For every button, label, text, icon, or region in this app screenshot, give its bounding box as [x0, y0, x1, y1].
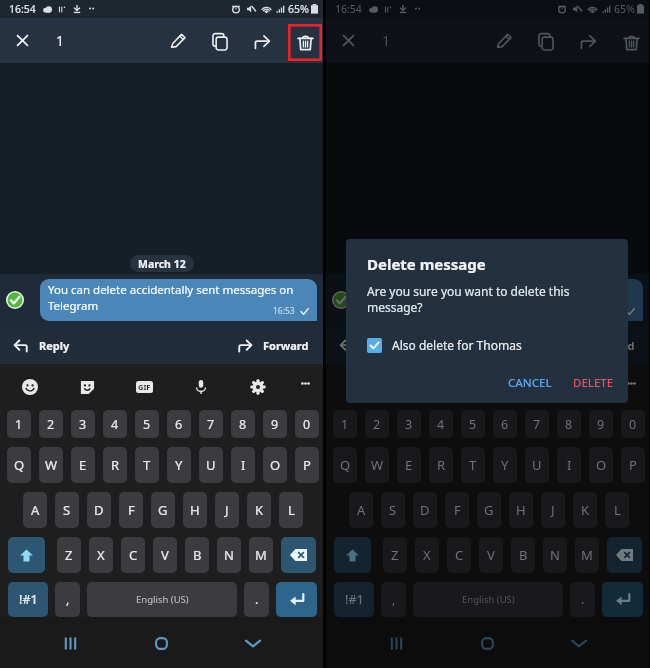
button[interactable]: D — [87, 492, 111, 528]
button[interactable]: Recents — [374, 621, 418, 665]
button[interactable]: Home — [139, 621, 183, 665]
button[interactable]: You can delete accidentally sent message… — [40, 279, 317, 321]
button[interactable]: P — [621, 447, 645, 483]
button[interactable]: H — [183, 492, 207, 528]
button[interactable]: Y — [493, 447, 517, 483]
button[interactable]: 4 — [103, 410, 127, 438]
button[interactable]: 5 — [461, 410, 485, 438]
button[interactable]: Also delete for Thomas — [367, 335, 522, 355]
button[interactable]: D — [413, 492, 437, 528]
button[interactable]: I — [231, 447, 255, 483]
button[interactable]: Q — [333, 447, 357, 483]
button[interactable]: M — [575, 537, 599, 573]
button[interactable]: !#1 — [8, 582, 48, 617]
button[interactable]: Hide keyboard — [231, 621, 275, 665]
button[interactable]: Home — [465, 621, 509, 665]
button[interactable]: Q — [7, 447, 31, 483]
button[interactable]: 3 — [71, 410, 95, 438]
button[interactable]: English (US) — [87, 582, 237, 617]
button[interactable]: 7 — [199, 410, 223, 438]
button[interactable]: Enter — [276, 582, 317, 617]
button[interactable]: !#1 — [334, 582, 374, 617]
button[interactable]: G — [151, 492, 175, 528]
button[interactable]: K — [247, 492, 271, 528]
button[interactable]: E — [71, 447, 95, 483]
button[interactable]: X — [415, 537, 439, 573]
button[interactable]: Recents — [48, 621, 92, 665]
button[interactable]: Stickers — [73, 373, 101, 401]
button[interactable]: DELETE — [565, 371, 622, 395]
button[interactable]: T — [461, 447, 485, 483]
button[interactable]: E — [397, 447, 421, 483]
button[interactable]: Settings — [570, 373, 598, 401]
button[interactable]: X — [89, 537, 113, 573]
button[interactable]: Shift — [334, 537, 371, 573]
button[interactable]: Close — [0, 18, 44, 63]
button[interactable]: O — [263, 447, 287, 483]
button[interactable]: Forward — [161, 326, 323, 364]
button[interactable]: R — [103, 447, 127, 483]
button[interactable]: More — [627, 373, 636, 401]
button[interactable]: 2 — [39, 410, 63, 438]
button[interactable]: More — [301, 373, 310, 401]
button[interactable]: Z — [57, 537, 81, 573]
button[interactable]: Forward — [487, 326, 649, 364]
button[interactable]: 9 — [263, 410, 287, 438]
button[interactable]: H — [509, 492, 533, 528]
button[interactable]: S — [55, 492, 79, 528]
button[interactable]: Reply — [0, 326, 161, 364]
button[interactable]: Reply — [326, 326, 487, 364]
button[interactable]: Voice input — [513, 373, 541, 401]
button[interactable]: Shift — [8, 537, 45, 573]
button[interactable]: , — [381, 582, 406, 617]
button[interactable]: 9 — [589, 410, 613, 438]
button[interactable]: I — [557, 447, 581, 483]
button[interactable]: 0 — [621, 410, 645, 438]
button[interactable]: T — [135, 447, 159, 483]
button[interactable]: Y — [167, 447, 191, 483]
button[interactable]: A — [23, 492, 47, 528]
button[interactable]: Delete — [609, 18, 647, 63]
button[interactable]: Edit — [484, 18, 525, 63]
button[interactable]: U — [525, 447, 549, 483]
button[interactable]: Edit — [158, 18, 199, 63]
button[interactable]: J — [215, 492, 239, 528]
button[interactable]: English (US) — [413, 582, 563, 617]
button[interactable]: J — [541, 492, 565, 528]
button[interactable]: You can delete accidentally sent message… — [366, 279, 643, 321]
button[interactable]: . — [570, 582, 595, 617]
button[interactable]: Forward — [566, 18, 609, 63]
button[interactable]: M — [249, 537, 273, 573]
button[interactable]: R — [429, 447, 453, 483]
button[interactable]: Enter — [602, 582, 643, 617]
button[interactable]: Backspace — [281, 537, 316, 573]
button[interactable]: B — [511, 537, 535, 573]
button[interactable]: Backspace — [607, 537, 642, 573]
button[interactable]: Voice input — [187, 373, 215, 401]
button[interactable]: F — [119, 492, 143, 528]
button[interactable]: W — [365, 447, 389, 483]
button[interactable]: 2 — [365, 410, 389, 438]
button[interactable]: F — [445, 492, 469, 528]
button[interactable]: O — [589, 447, 613, 483]
button[interactable]: 7 — [525, 410, 549, 438]
button[interactable]: , — [55, 582, 80, 617]
button[interactable]: Delete — [283, 18, 321, 63]
button[interactable]: Settings — [244, 373, 272, 401]
button[interactable]: Hide keyboard — [557, 621, 601, 665]
button[interactable]: 4 — [429, 410, 453, 438]
button[interactable]: . — [244, 582, 269, 617]
button[interactable]: V — [153, 537, 177, 573]
button[interactable]: Z — [383, 537, 407, 573]
button[interactable]: 8 — [231, 410, 255, 438]
button[interactable]: L — [605, 492, 629, 528]
button[interactable]: Close — [326, 18, 370, 63]
button[interactable]: 3 — [397, 410, 421, 438]
button[interactable]: C — [447, 537, 471, 573]
button[interactable]: P — [295, 447, 319, 483]
button[interactable]: 6 — [167, 410, 191, 438]
button[interactable]: V — [479, 537, 503, 573]
button[interactable]: 8 — [557, 410, 581, 438]
